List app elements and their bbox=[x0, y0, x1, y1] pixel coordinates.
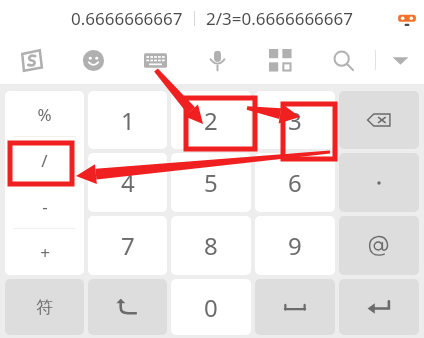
button[interactable]: Enter bbox=[339, 279, 419, 335]
button[interactable]: 8 bbox=[171, 216, 251, 275]
button[interactable]: 3 bbox=[255, 91, 335, 149]
button[interactable]: 2/3=0.6666666667 bbox=[200, 7, 360, 30]
staticText: + bbox=[40, 241, 50, 264]
button[interactable]: Backspace bbox=[339, 91, 419, 149]
button[interactable]: Space bbox=[255, 279, 335, 335]
button[interactable]: Return to letters bbox=[88, 279, 167, 335]
button[interactable]: More tools bbox=[249, 36, 312, 84]
staticText: 2/3=0.6666666667 bbox=[206, 7, 354, 30]
button[interactable]: 7 bbox=[88, 216, 167, 275]
button[interactable]: Keyboard layout bbox=[124, 36, 186, 84]
staticText: 3 bbox=[288, 104, 302, 137]
staticText: 2 bbox=[204, 104, 218, 137]
staticText: 8 bbox=[204, 229, 218, 262]
button[interactable]: 5 bbox=[171, 153, 251, 212]
staticText: 0 bbox=[204, 291, 218, 324]
button[interactable]: Period bbox=[339, 153, 419, 212]
staticText: 0.6666666667 bbox=[71, 7, 183, 30]
button[interactable]: Assistant mascot bbox=[395, 6, 419, 30]
button[interactable]: 0.6666666667 bbox=[65, 7, 189, 30]
button[interactable]: % bbox=[5, 91, 84, 137]
staticText: 9 bbox=[288, 229, 302, 262]
staticText: / bbox=[41, 149, 48, 172]
button[interactable]: Search bbox=[312, 36, 375, 84]
button[interactable]: 符 bbox=[5, 279, 84, 335]
button[interactable]: + bbox=[5, 229, 84, 275]
button[interactable]: Emoji bbox=[62, 36, 124, 84]
button[interactable]: 4 bbox=[88, 153, 167, 212]
button[interactable]: Sogou input method bbox=[0, 36, 62, 84]
button[interactable]: 6 bbox=[255, 153, 335, 212]
button[interactable]: 0 bbox=[171, 279, 251, 335]
staticText: - bbox=[42, 195, 48, 218]
staticText: 4 bbox=[121, 166, 135, 199]
button[interactable]: - bbox=[5, 183, 84, 229]
button[interactable]: / bbox=[5, 137, 84, 183]
staticText: 1 bbox=[121, 104, 135, 137]
button[interactable]: 2 bbox=[171, 91, 251, 149]
button[interactable]: 9 bbox=[255, 216, 335, 275]
staticText: 7 bbox=[121, 229, 135, 262]
button[interactable]: 1 bbox=[88, 91, 167, 149]
staticText: % bbox=[37, 103, 52, 126]
staticText: 5 bbox=[204, 166, 218, 199]
button[interactable]: Collapse toolbar bbox=[376, 36, 424, 84]
button[interactable]: Voice input bbox=[186, 36, 249, 84]
staticText: 符 bbox=[36, 297, 53, 318]
staticText: 6 bbox=[288, 166, 302, 199]
button[interactable]: At sign bbox=[339, 216, 419, 275]
